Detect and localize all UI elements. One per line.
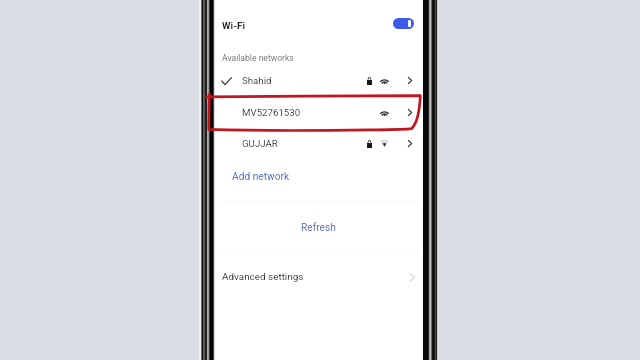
button[interactable]: Add network: [214, 162, 423, 191]
button[interactable]: Wi-Fi: [214, 8, 423, 42]
staticText: Shahid: [242, 75, 272, 86]
staticText: Available networks: [222, 53, 294, 63]
button[interactable]: Refresh: [214, 204, 423, 251]
button[interactable]: Wi-Fi toggle, on: [393, 18, 414, 29]
staticText: GUJJAR: [242, 138, 278, 149]
button[interactable]: Shahid: [214, 65, 423, 96]
staticText: MV52761530: [242, 107, 301, 118]
staticText: Advanced settings: [222, 271, 304, 283]
button[interactable]: MV52761530: [214, 97, 423, 128]
button[interactable]: GUJJAR: [214, 128, 423, 159]
staticText: Refresh: [301, 222, 336, 234]
staticText: Add network: [232, 171, 290, 183]
button[interactable]: Advanced settings: [214, 258, 423, 296]
staticText: Wi-Fi: [222, 20, 245, 31]
